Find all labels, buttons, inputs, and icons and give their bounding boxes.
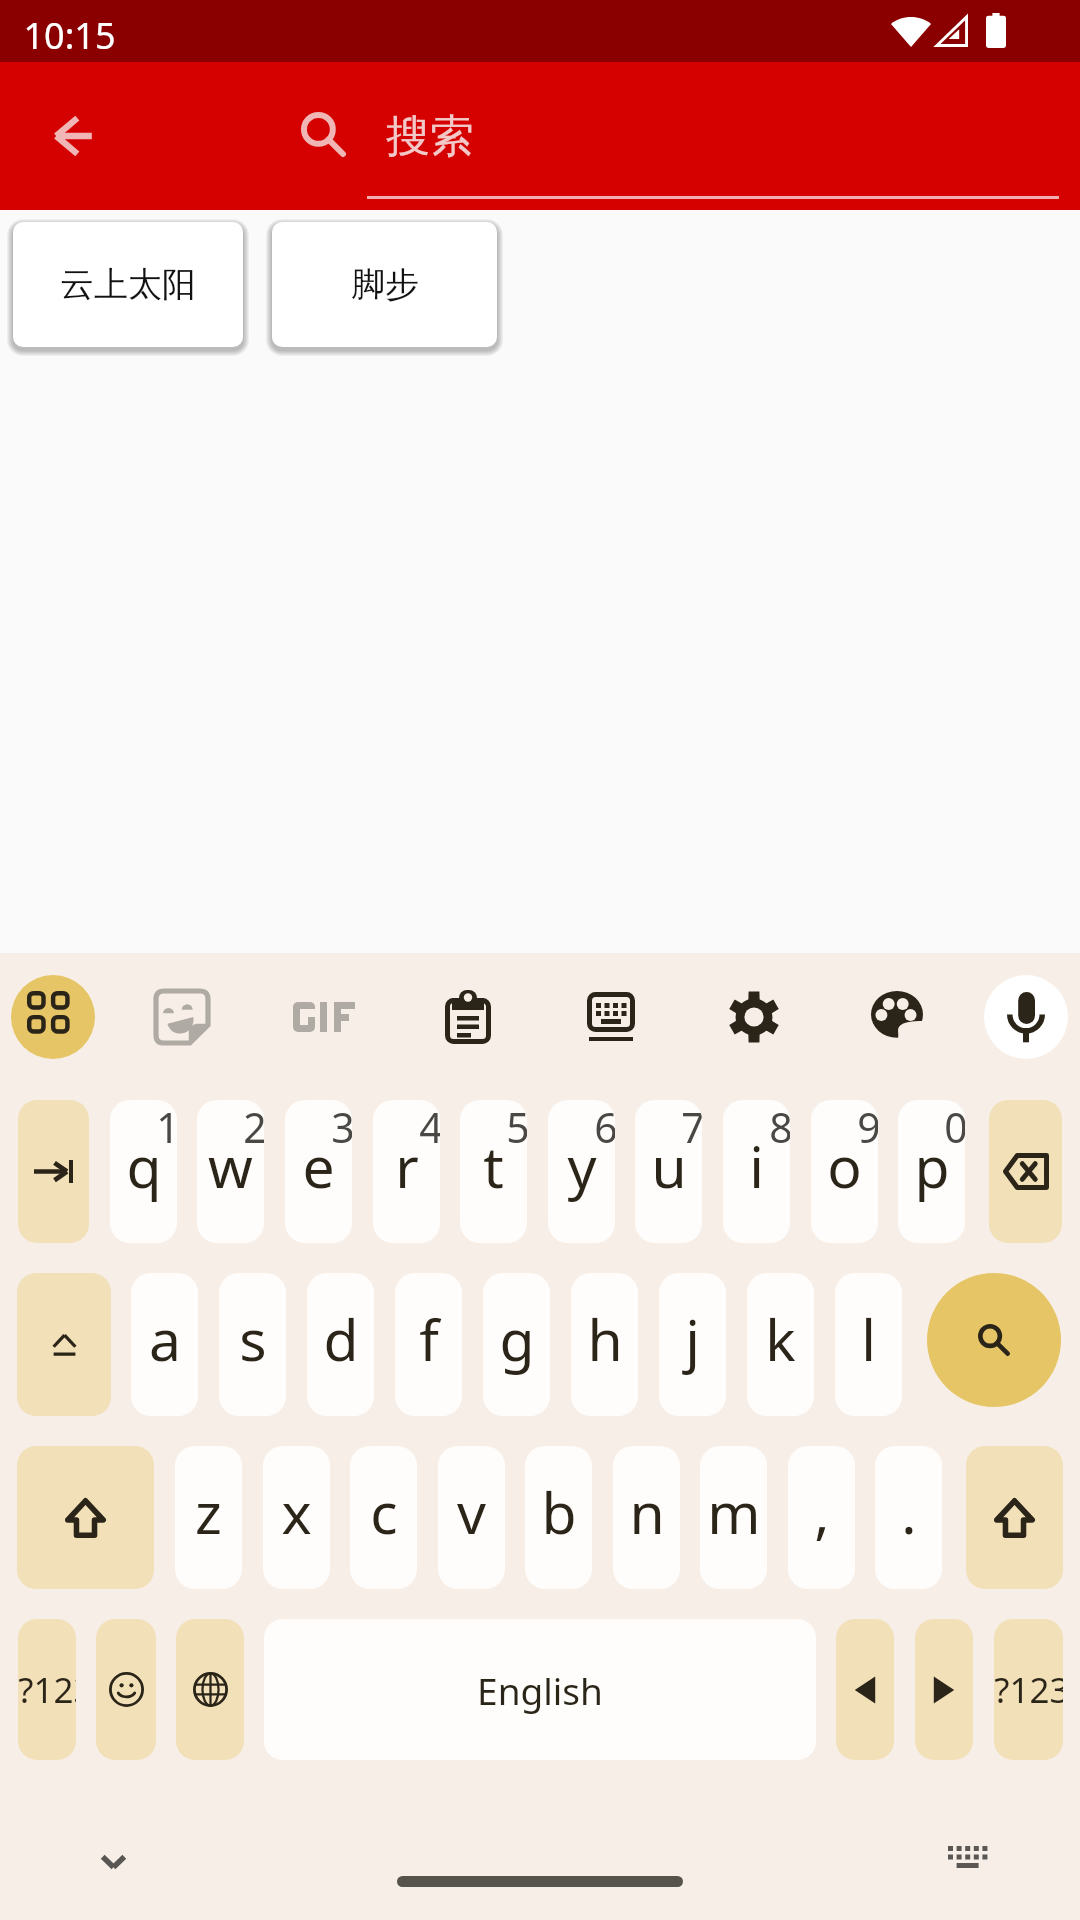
staticText: o bbox=[827, 1127, 862, 1205]
staticText: e bbox=[302, 1127, 335, 1205]
staticText: f bbox=[419, 1300, 439, 1378]
button[interactable]: 1 bbox=[110, 1100, 177, 1243]
button[interactable]: Keyboard tool bbox=[140, 975, 224, 1059]
staticText: z bbox=[195, 1473, 222, 1551]
button[interactable]: English bbox=[264, 1619, 816, 1760]
button[interactable]: Keyboard tool bbox=[855, 975, 939, 1059]
button[interactable]: 5 bbox=[460, 1100, 527, 1243]
staticText: 2 bbox=[243, 1100, 264, 1155]
staticText: g bbox=[499, 1300, 535, 1378]
staticText: . bbox=[901, 1473, 917, 1551]
button[interactable]: Search bbox=[927, 1273, 1061, 1407]
staticText: 5 bbox=[506, 1100, 527, 1155]
button[interactable]: 4 bbox=[373, 1100, 440, 1243]
staticText: 3 bbox=[331, 1100, 352, 1155]
staticText: t bbox=[483, 1127, 504, 1205]
button[interactable]: k bbox=[747, 1273, 814, 1416]
staticText: m bbox=[707, 1473, 761, 1551]
staticText: r bbox=[395, 1127, 419, 1205]
staticText: x bbox=[281, 1473, 312, 1551]
button[interactable]: b bbox=[525, 1446, 592, 1589]
button[interactable]: Voice input bbox=[984, 975, 1068, 1059]
button[interactable]: h bbox=[571, 1273, 638, 1416]
button[interactable]: Keyboard layout bbox=[569, 975, 653, 1059]
staticText: c bbox=[370, 1473, 398, 1551]
staticText: 7 bbox=[681, 1100, 702, 1155]
staticText: k bbox=[765, 1300, 796, 1378]
button[interactable] bbox=[836, 1619, 894, 1760]
staticText: a bbox=[149, 1300, 181, 1378]
staticText: 1 bbox=[156, 1100, 177, 1155]
button[interactable] bbox=[17, 1446, 154, 1589]
staticText: p bbox=[914, 1127, 950, 1205]
button[interactable] bbox=[176, 1619, 244, 1760]
staticText: 10:15 bbox=[23, 11, 116, 60]
button[interactable] bbox=[966, 1446, 1063, 1589]
button[interactable]: 0 bbox=[898, 1100, 965, 1243]
staticText: English bbox=[477, 1665, 603, 1715]
button[interactable]: Keyboard tool bbox=[11, 975, 95, 1059]
staticText: s bbox=[239, 1300, 267, 1378]
button[interactable] bbox=[96, 1619, 156, 1760]
button[interactable]: s bbox=[219, 1273, 286, 1416]
staticText: w bbox=[208, 1127, 253, 1205]
button[interactable]: a bbox=[131, 1273, 198, 1416]
button[interactable]: 7 bbox=[635, 1100, 702, 1243]
button[interactable]: 云上太阳 bbox=[13, 222, 243, 347]
staticText: 4 bbox=[419, 1100, 440, 1155]
staticText: q bbox=[126, 1127, 162, 1205]
button[interactable]: g bbox=[483, 1273, 550, 1416]
button[interactable]: x bbox=[263, 1446, 330, 1589]
button[interactable]: . bbox=[875, 1446, 942, 1589]
button[interactable]: Switch keyboard bbox=[933, 1822, 1003, 1892]
staticText: y bbox=[567, 1127, 597, 1205]
staticText: 云上太阳 bbox=[60, 263, 196, 306]
button[interactable]: GIF bbox=[282, 975, 366, 1059]
button[interactable]: Clipboard bbox=[426, 975, 510, 1059]
button[interactable]: ?123 bbox=[994, 1619, 1063, 1760]
button[interactable]: 脚步 bbox=[272, 222, 497, 347]
button[interactable]: v bbox=[438, 1446, 505, 1589]
button[interactable]: Hide keyboard bbox=[78, 1827, 148, 1897]
button[interactable]: 3 bbox=[285, 1100, 352, 1243]
button[interactable]: Back bbox=[26, 88, 122, 184]
staticText: n bbox=[629, 1473, 665, 1551]
button[interactable] bbox=[915, 1619, 973, 1760]
button[interactable]: 6 bbox=[548, 1100, 615, 1243]
staticText: d bbox=[323, 1300, 359, 1378]
button[interactable]: 2 bbox=[197, 1100, 264, 1243]
staticText: i bbox=[749, 1127, 764, 1205]
button[interactable] bbox=[17, 1273, 111, 1416]
button[interactable]: ?123 bbox=[18, 1619, 76, 1760]
button[interactable] bbox=[989, 1100, 1062, 1243]
staticText: b bbox=[541, 1473, 577, 1551]
button[interactable]: c bbox=[350, 1446, 417, 1589]
staticText: h bbox=[587, 1300, 623, 1378]
staticText: , bbox=[814, 1473, 830, 1551]
staticText: ?123 bbox=[18, 1666, 76, 1714]
button[interactable]: j bbox=[659, 1273, 726, 1416]
staticText: l bbox=[861, 1300, 876, 1378]
button[interactable]: m bbox=[700, 1446, 767, 1589]
staticText: u bbox=[651, 1127, 687, 1205]
staticText: 搜索 bbox=[386, 109, 474, 164]
button[interactable]: d bbox=[307, 1273, 374, 1416]
button[interactable]: 8 bbox=[723, 1100, 790, 1243]
button[interactable]: f bbox=[395, 1273, 462, 1416]
button[interactable]: 9 bbox=[811, 1100, 878, 1243]
button[interactable]: , bbox=[788, 1446, 855, 1589]
staticText: 9 bbox=[857, 1100, 878, 1155]
button[interactable] bbox=[18, 1100, 89, 1243]
staticText: 脚步 bbox=[351, 263, 419, 306]
staticText: 0 bbox=[944, 1100, 965, 1155]
staticText: v bbox=[457, 1473, 486, 1551]
button[interactable]: l bbox=[835, 1273, 902, 1416]
button[interactable]: z bbox=[175, 1446, 242, 1589]
staticText: 8 bbox=[769, 1100, 790, 1155]
button[interactable]: n bbox=[613, 1446, 680, 1589]
staticText: j bbox=[685, 1300, 700, 1378]
button[interactable]: Keyboard tool bbox=[712, 975, 796, 1059]
staticText: 6 bbox=[594, 1100, 615, 1155]
staticText: ?123 bbox=[994, 1666, 1063, 1714]
